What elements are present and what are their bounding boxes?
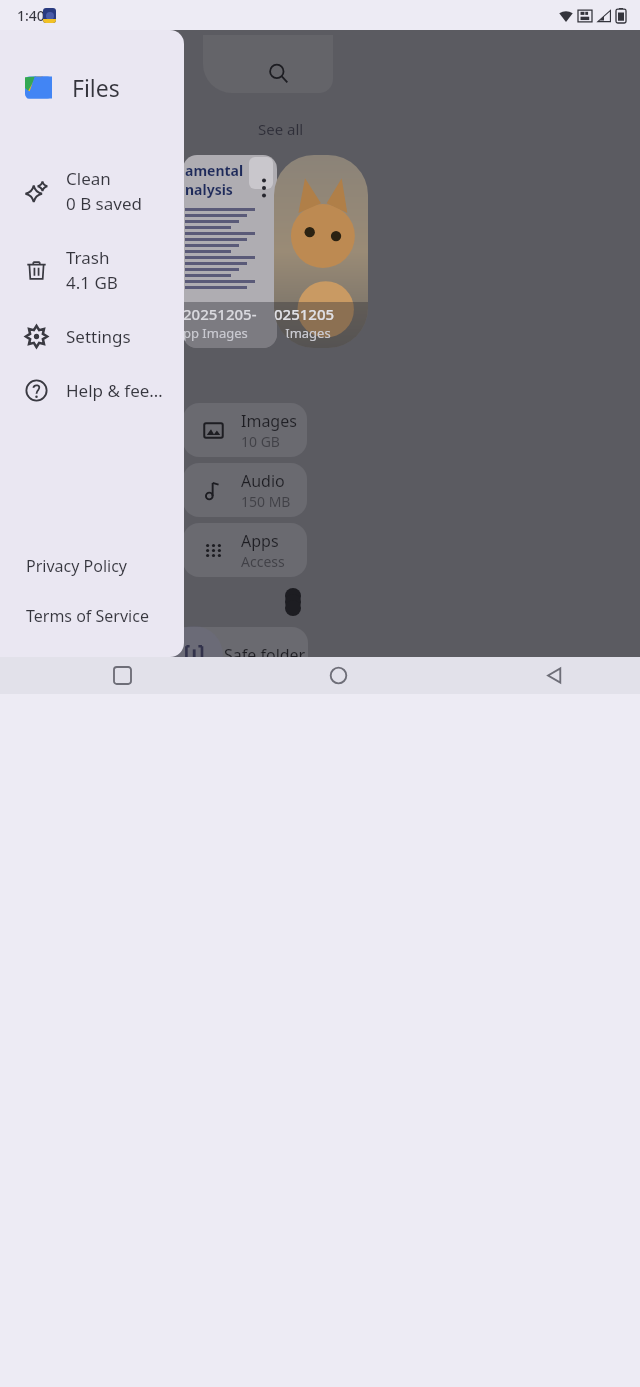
button[interactable]: amental — [183, 155, 277, 348]
staticText: 1:40 — [17, 6, 45, 25]
staticText: 0251205 — [274, 304, 335, 324]
button[interactable]: Settings — [0, 321, 184, 352]
button[interactable]: See all — [258, 119, 304, 139]
button[interactable]: Clean — [0, 163, 184, 219]
button[interactable]: Audio — [183, 463, 307, 517]
staticText: Apps — [241, 530, 279, 552]
staticText: pp Images — [183, 324, 248, 342]
button[interactable]: Images — [183, 403, 307, 457]
staticText: 0 B saved — [66, 192, 142, 215]
button[interactable]: Terms of Service — [0, 601, 184, 631]
staticText: Images — [241, 410, 297, 432]
button[interactable]: Help & feedback — [0, 375, 184, 406]
staticText: Access required — [241, 552, 307, 571]
button[interactable]: Back — [532, 657, 576, 694]
staticText: 150 MB — [241, 492, 291, 511]
button[interactable]: Home — [316, 657, 360, 694]
staticText: 20251205-WA — [183, 304, 277, 324]
staticText: Terms of Service — [26, 605, 149, 627]
button[interactable]: Search — [265, 60, 291, 86]
button[interactable]: Trash — [0, 242, 184, 298]
staticText: 10 GB — [241, 432, 280, 451]
staticText: amental — [185, 161, 244, 180]
staticText: 4.1 GB — [66, 271, 118, 294]
staticText: Help & feedback — [66, 379, 172, 402]
staticText: Safe folder — [224, 644, 306, 666]
button[interactable]: More options — [280, 589, 306, 615]
staticText: Settings — [66, 325, 131, 348]
staticText: Clean — [66, 167, 111, 190]
staticText: Privacy Policy — [26, 555, 127, 577]
staticText: Files — [72, 72, 120, 103]
staticText: See all — [258, 119, 304, 139]
button[interactable]: Apps — [183, 523, 307, 577]
button[interactable]: Recent apps — [100, 657, 144, 694]
button[interactable]: 0251205 — [274, 155, 368, 348]
staticText: Trash — [66, 246, 110, 269]
staticText: o Images — [274, 324, 331, 342]
button[interactable]: Safe folder — [160, 627, 308, 683]
staticText: Audio — [241, 470, 285, 492]
staticText: nalysis — [185, 180, 233, 199]
button[interactable]: Privacy Policy — [0, 551, 184, 581]
